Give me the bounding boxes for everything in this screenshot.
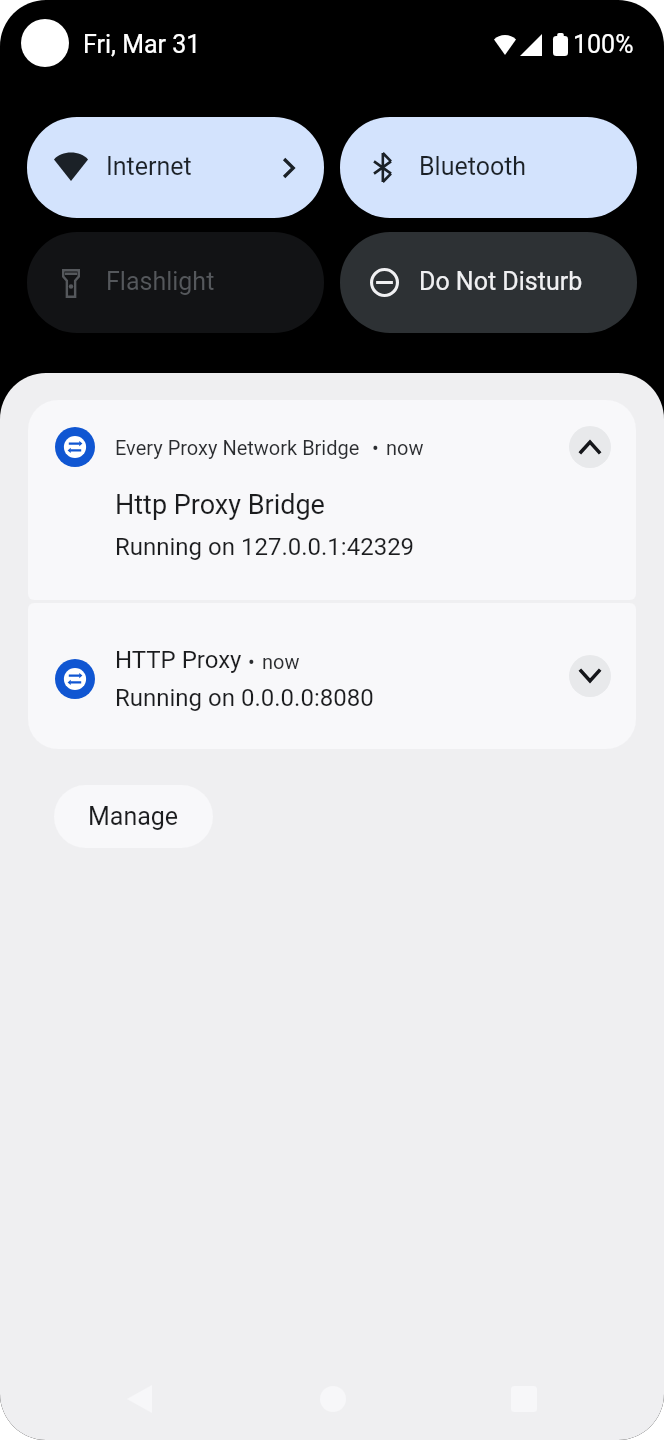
staticText: HTTP Proxy (115, 646, 242, 674)
button[interactable]: Manage (54, 785, 213, 848)
button[interactable]: Internet (27, 117, 324, 218)
button[interactable]: Collapse notification (569, 426, 611, 468)
staticText: Flashlight (106, 267, 215, 296)
button[interactable]: Bluetooth (340, 117, 637, 218)
button[interactable]: Expand notification (569, 655, 611, 697)
staticText: • (248, 650, 255, 673)
staticText: Http Proxy Bridge (115, 489, 325, 521)
button[interactable]: Every Proxy Network Bridge (28, 400, 636, 600)
staticText: Fri, Mar 31 (83, 30, 201, 59)
staticText: • (372, 436, 379, 459)
button[interactable]: HTTP Proxy (28, 603, 636, 749)
button[interactable]: Flashlight (27, 232, 324, 333)
staticText: Bluetooth (419, 152, 527, 181)
staticText: now (386, 436, 424, 459)
staticText: Internet (106, 152, 192, 181)
staticText: 100% (573, 30, 634, 59)
staticText: Manage (88, 802, 179, 831)
staticText: Running on 127.0.0.1:42329 (115, 533, 415, 561)
staticText: now (262, 650, 300, 673)
button[interactable]: Do Not Disturb (340, 232, 637, 333)
staticText: Running on 0.0.0.0:8080 (115, 684, 374, 712)
staticText: Do Not Disturb (419, 267, 583, 296)
staticText: Every Proxy Network Bridge (115, 436, 360, 459)
